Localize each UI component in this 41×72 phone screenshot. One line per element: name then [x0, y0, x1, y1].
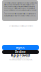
staticText: elit sed do eiusmod tempor incididunt ut… [4, 4, 34, 6]
staticText: reprehenderit in voluptate velit esse ci… [4, 13, 36, 15]
staticText: Decline [15, 50, 26, 54]
staticText: Lorem ipsum dolor sit amet, consectetur … [4, 2, 37, 4]
staticText: dolore magna aliqua. Ut enim ad minim ve… [4, 6, 35, 7]
button[interactable]: Decline [2, 50, 39, 54]
staticText: Scroll down to accept the agreement [8, 25, 32, 27]
staticText: received and is processing now. [9, 59, 32, 61]
staticText: eu fugiat nulla pariatur excepteur sint … [4, 15, 35, 16]
staticText: Agree [16, 46, 25, 49]
staticText: Approved [10, 52, 30, 58]
button[interactable]: Agree [2, 45, 39, 50]
staticText: ex ea commodo consequat. Duis aute irure… [4, 9, 37, 13]
staticText: Your application has been [11, 57, 29, 59]
staticText: nostrud exercitation ullamco laboris nis… [4, 7, 35, 9]
